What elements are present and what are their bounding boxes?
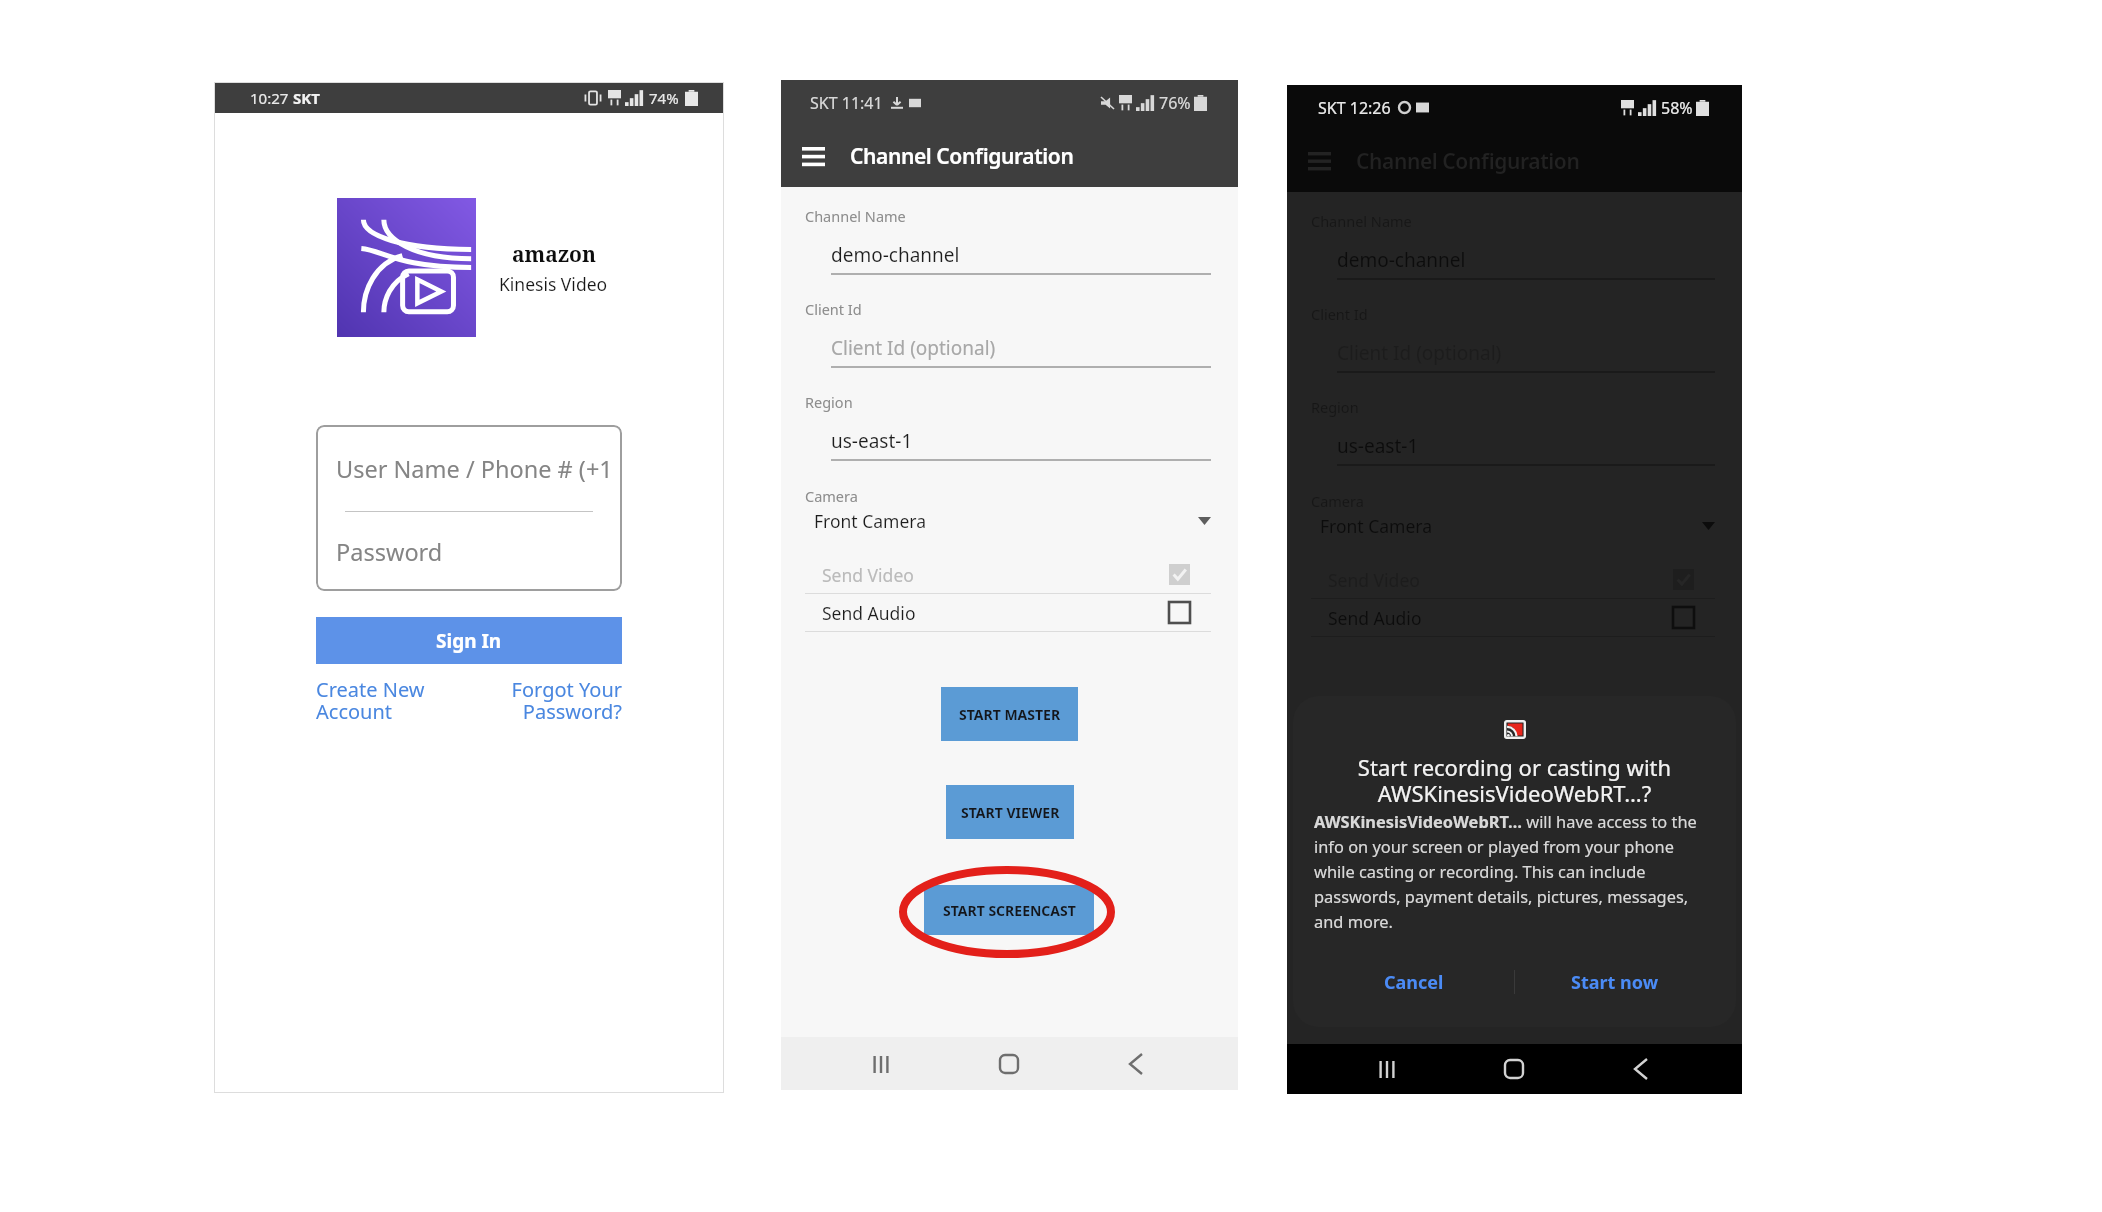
button[interactable]: START VIEWER <box>946 785 1074 839</box>
staticText: 76% <box>1159 92 1191 114</box>
staticText: Kinesis Video <box>499 272 608 296</box>
staticText: Client Id <box>805 299 862 319</box>
button[interactable]: Client Id (optional) <box>831 335 1211 368</box>
button[interactable]: Front Camera <box>805 507 1211 535</box>
button[interactable]: User Name / Phone # (+1 <box>316 425 622 591</box>
button[interactable]: Back <box>1617 1045 1665 1093</box>
staticText: SKT 11:41 <box>810 92 883 114</box>
staticText: Client Id (optional) <box>831 335 996 361</box>
button[interactable]: Cancel <box>1314 955 1514 1009</box>
staticText: Cancel <box>1384 970 1444 995</box>
staticText: 58% <box>1661 97 1693 119</box>
staticText: Start now <box>1571 970 1659 995</box>
staticText: us-east-1 <box>831 428 913 454</box>
staticText: Create New Account <box>316 676 425 725</box>
staticText: Sign In <box>436 628 502 654</box>
button[interactable]: Sign In <box>316 617 622 664</box>
staticText: START VIEWER <box>961 803 1060 822</box>
staticText: START SCREENCAST <box>943 901 1076 920</box>
button[interactable]: Create New Account <box>316 676 469 725</box>
staticText: Forgot Your Password? <box>469 676 622 725</box>
button[interactable]: START SCREENCAST <box>924 885 1094 935</box>
staticText: SKT <box>293 88 320 108</box>
staticText: amazon <box>512 240 596 269</box>
button[interactable]: Start now <box>1515 955 1715 1009</box>
staticText: Channel Configuration <box>850 142 1074 171</box>
staticText: Channel Name <box>805 206 906 226</box>
button[interactable]: us-east-1 <box>831 428 1211 461</box>
staticText: demo-channel <box>1337 247 1466 273</box>
button[interactable]: Back <box>1112 1040 1160 1088</box>
staticText: Camera <box>1311 491 1364 511</box>
staticText: AWSKinesisVideoWebRT… will have access t… <box>1314 810 1715 932</box>
button[interactable]: Send Audio <box>805 594 1211 632</box>
staticText: Region <box>805 392 853 412</box>
staticText: us-east-1 <box>1337 433 1419 459</box>
staticText: START MASTER <box>959 705 1061 724</box>
staticText: Region <box>1311 397 1359 417</box>
staticText: Send Audio <box>1328 606 1422 630</box>
button[interactable]: Recents <box>857 1040 905 1088</box>
staticText: Channel Name <box>1311 211 1412 231</box>
button[interactable]: Forgot Your Password? <box>469 676 622 725</box>
button[interactable]: Home <box>1490 1045 1538 1093</box>
staticText: Front Camera <box>1320 514 1433 538</box>
button[interactable]: demo-channel <box>831 242 1211 275</box>
staticText: Start recording or casting with AWSKines… <box>1314 752 1715 809</box>
staticText: User Name / Phone # (+1 <box>336 453 613 485</box>
staticText: Channel Configuration <box>1356 147 1580 176</box>
staticText: 74% <box>649 88 679 108</box>
staticText: Client Id <box>1311 304 1368 324</box>
staticText: Camera <box>805 486 858 506</box>
button[interactable]: Open navigation menu <box>791 134 835 178</box>
button[interactable]: Home <box>985 1040 1033 1088</box>
button[interactable]: START MASTER <box>941 687 1078 741</box>
staticText: Front Camera <box>814 509 927 533</box>
staticText: Send Video <box>822 563 914 587</box>
staticText: Send Audio <box>822 601 916 625</box>
button[interactable]: Send Video <box>805 556 1211 594</box>
staticText: demo-channel <box>831 242 960 268</box>
button[interactable]: Recents <box>1363 1045 1411 1093</box>
staticText: Password <box>336 536 443 568</box>
staticText: SKT 12:26 <box>1318 97 1391 119</box>
staticText: 10:27 <box>250 88 293 108</box>
